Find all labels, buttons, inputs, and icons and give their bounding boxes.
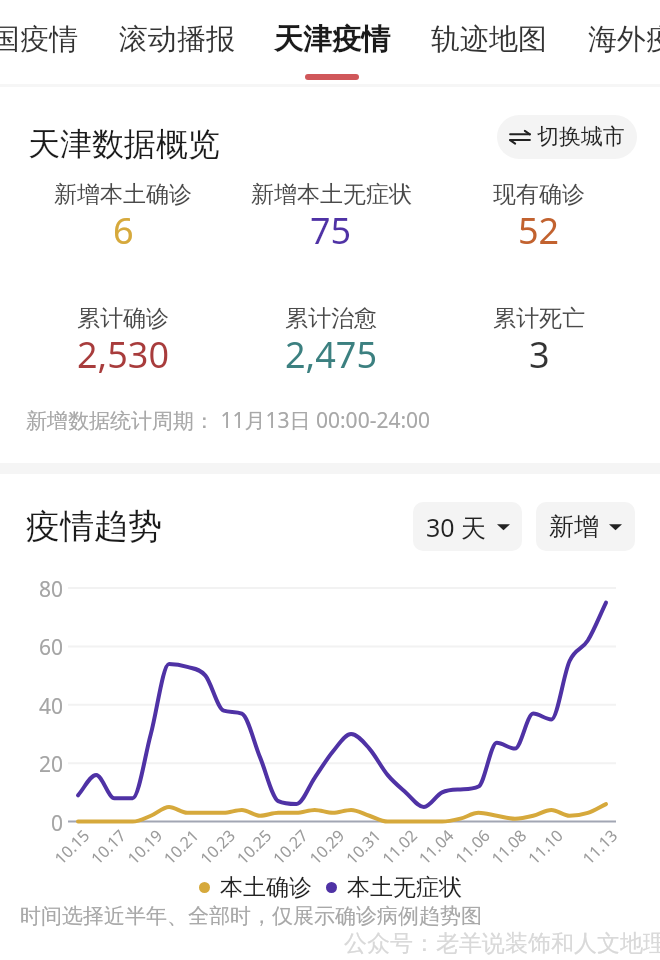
staticText: 6 (113, 206, 134, 255)
button[interactable]: 海外疫情 (568, 0, 660, 94)
button[interactable]: 全国疫情 (0, 0, 98, 94)
button[interactable]: 轨迹地图 (411, 0, 567, 94)
staticText: 新增数据统计周期： 11月13日 00:00-24:00 (26, 406, 431, 435)
staticText: 60 (15, 633, 63, 662)
staticText: 现有确诊 (493, 180, 585, 209)
staticText: 20 (15, 750, 63, 779)
staticText: 天津疫情 (274, 21, 390, 58)
button[interactable]: 本土无症状 (326, 873, 462, 902)
staticText: 疫情趋势 (26, 505, 162, 548)
button[interactable]: 选择时间范围 30 天 (413, 502, 522, 551)
staticText: 天津数据概览 (28, 124, 220, 164)
staticText: 切换城市 (537, 123, 625, 151)
staticText: 52 (518, 206, 560, 255)
staticText: 全国疫情 (0, 21, 78, 58)
staticText: 0 (15, 809, 63, 838)
staticText: 累计治愈 (285, 304, 377, 333)
staticText: 海外疫情 (588, 21, 660, 58)
staticText: 累计确诊 (77, 304, 169, 333)
staticText: 滚动播报 (119, 21, 235, 58)
staticText: 轨迹地图 (431, 21, 547, 58)
staticText: 30 天 (426, 510, 487, 544)
button[interactable]: 选择数据类型 新增 (536, 502, 635, 551)
staticText: 新增 (549, 511, 599, 542)
staticText: 2,530 (77, 330, 170, 379)
button[interactable]: 天津疫情 (254, 0, 410, 94)
staticText: 2,475 (285, 330, 378, 379)
staticText: 80 (15, 575, 63, 604)
button[interactable]: 切换城市 (497, 115, 637, 159)
staticText: 40 (15, 692, 63, 721)
staticText: 本土无症状 (347, 873, 462, 902)
staticText: 时间选择近半年、全部时，仅展示确诊病例趋势图 (20, 903, 482, 929)
staticText: 本土确诊 (220, 873, 312, 902)
staticText: 3 (529, 330, 550, 379)
staticText: 75 (310, 206, 352, 255)
staticText: 累计死亡 (493, 304, 585, 333)
staticText: 新增本土无症状 (251, 180, 412, 209)
staticText: 公众号：老羊说装饰和人文地理 (344, 929, 660, 958)
button[interactable]: 本土确诊 (199, 873, 312, 902)
button[interactable]: 滚动播报 (99, 0, 255, 94)
staticText: 新增本土确诊 (54, 180, 192, 209)
